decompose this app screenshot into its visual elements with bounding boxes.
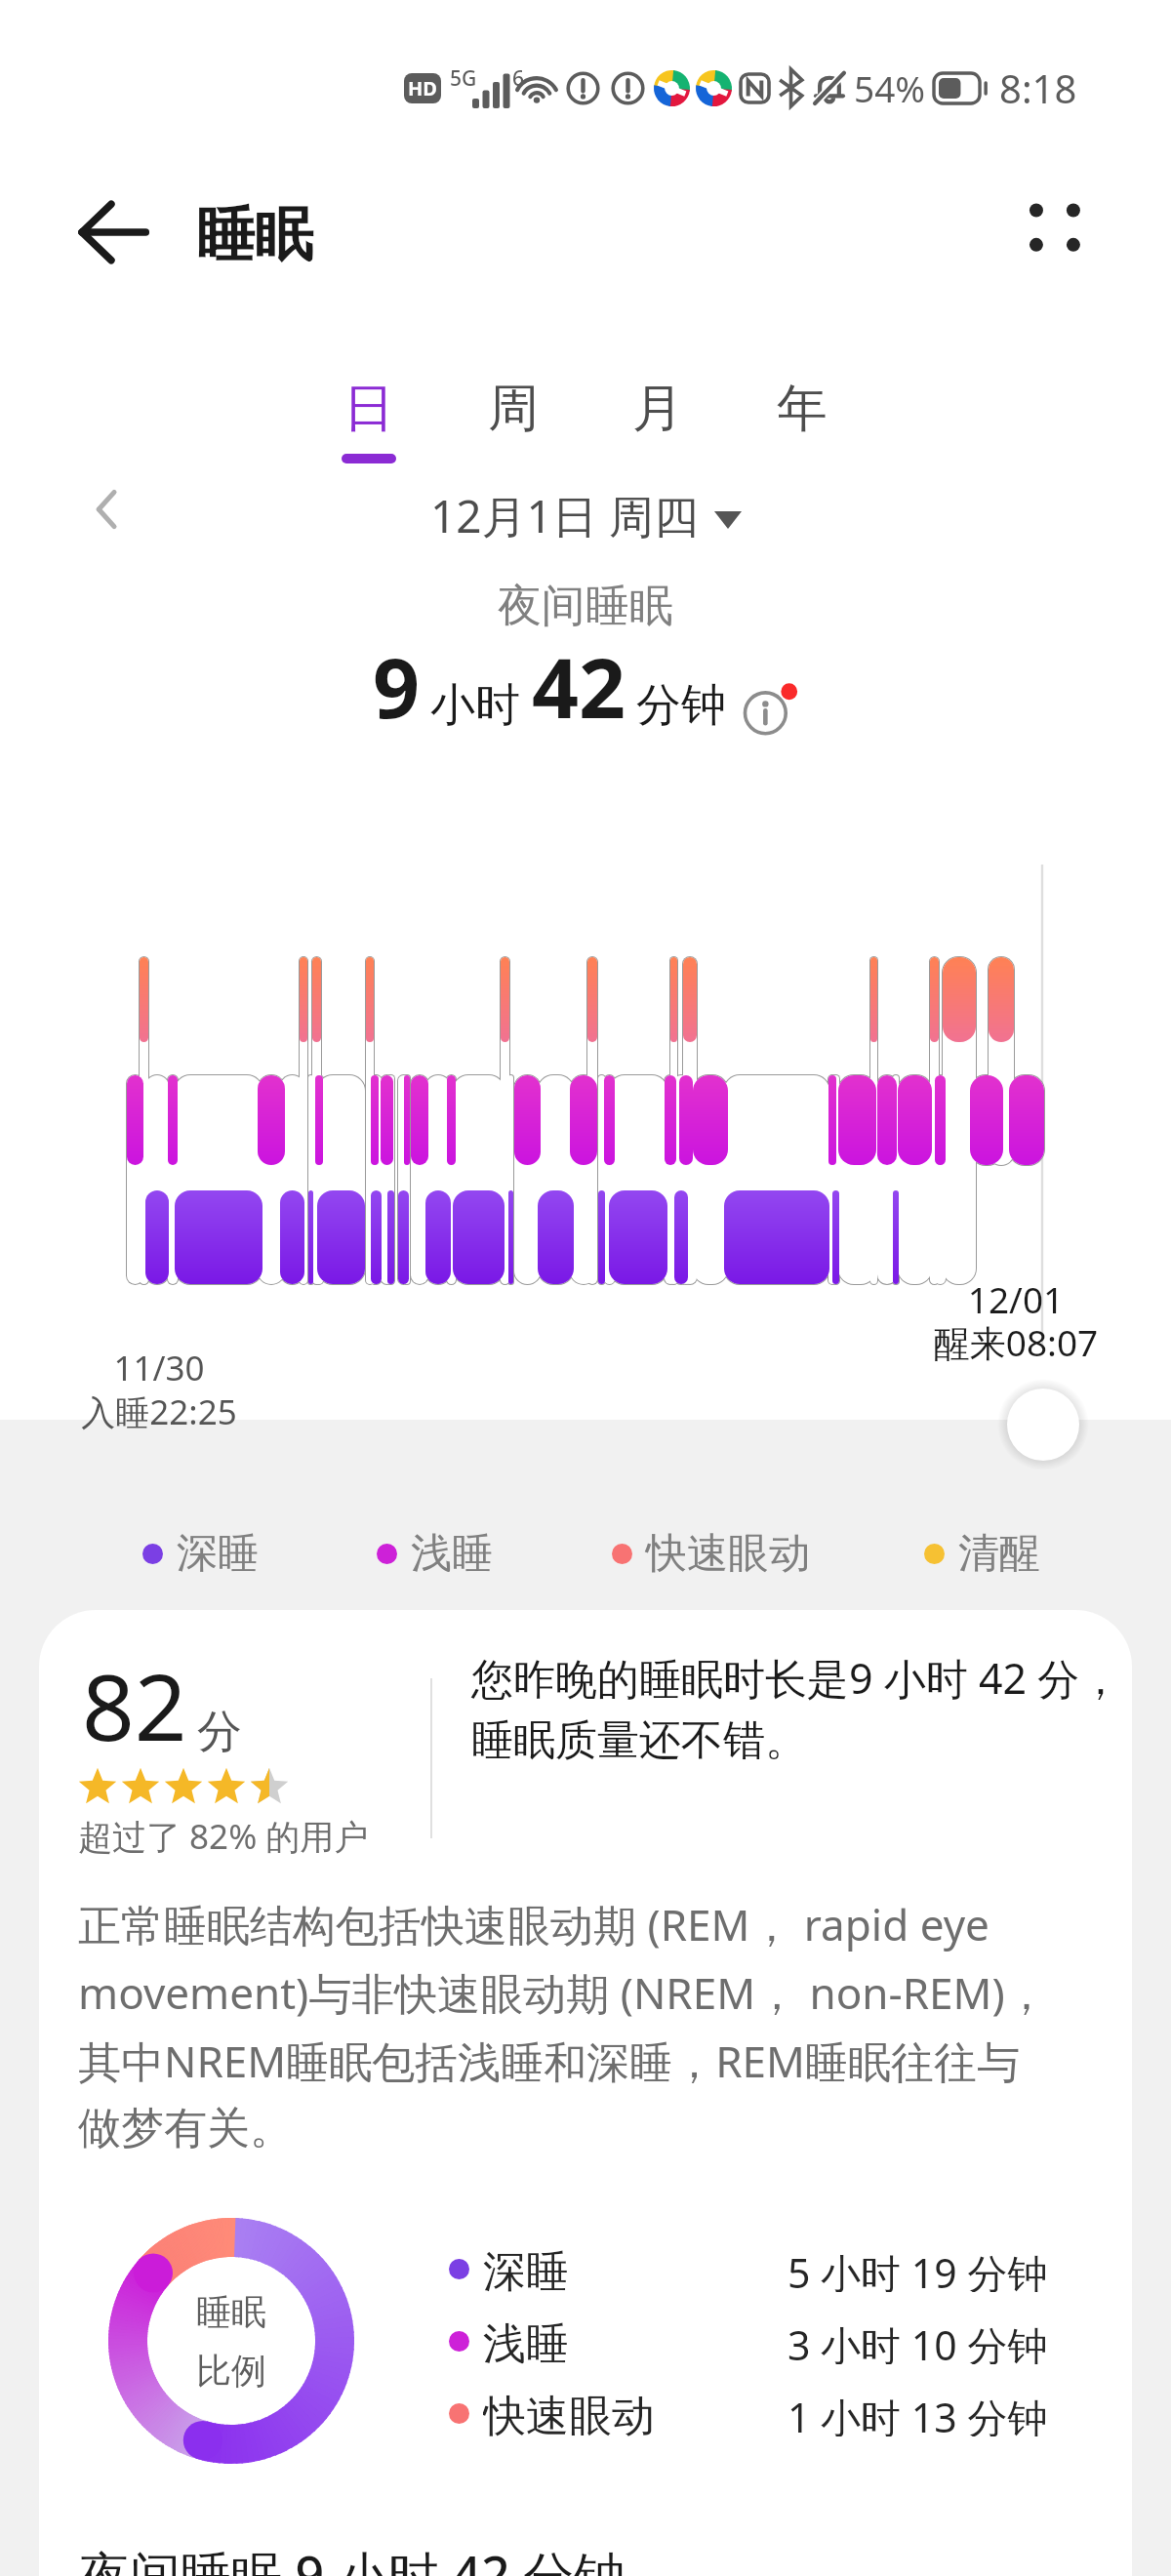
staticText: 1 小时 13 分钟 xyxy=(787,2390,1048,2436)
staticText: 月 xyxy=(632,377,683,441)
button[interactable]: 周 xyxy=(441,377,585,454)
button[interactable]: 月 xyxy=(585,377,730,454)
staticText: 年 xyxy=(777,377,828,441)
staticText: 12/01 醒来08:07 xyxy=(927,1274,1105,1367)
staticText: 6 xyxy=(512,64,525,93)
staticText: 睡眠 比例 xyxy=(196,2290,266,2393)
staticText: 分钟 xyxy=(636,677,726,734)
staticText: 深睡 xyxy=(177,1528,259,1580)
staticText: 快速眼动 xyxy=(646,1528,810,1580)
button[interactable]: 日 xyxy=(297,377,441,463)
button[interactable]: 年 xyxy=(730,377,874,454)
staticText: 睡眠 xyxy=(196,198,313,272)
staticText: 浅睡 xyxy=(411,1528,493,1580)
staticText: 夜间睡眠 9 小时 42 分钟 xyxy=(79,2539,626,2576)
staticText: 8:18 xyxy=(999,61,1077,114)
staticText: 42 xyxy=(532,630,626,742)
staticText: 浅睡 xyxy=(483,2317,569,2364)
button[interactable]: Expand chart xyxy=(988,1369,1099,1480)
button[interactable]: 12月1日 周四 xyxy=(430,485,742,546)
staticText: 5G xyxy=(450,64,477,93)
staticText: HD xyxy=(408,75,437,101)
button[interactable]: 深睡 xyxy=(142,1528,377,1580)
staticText: 夜间睡眠 xyxy=(0,579,1171,634)
staticText: 您昨晚的睡眠时长是9 小时 42 分， 睡眠质量还不错。 xyxy=(471,1649,1132,1767)
staticText: 深睡 xyxy=(483,2245,569,2292)
staticText: 11/30 入睡22:25 xyxy=(73,1345,245,1434)
button[interactable]: 快速眼动 xyxy=(449,2390,1062,2436)
staticText: 周 xyxy=(488,377,539,441)
button[interactable]: Previous day xyxy=(86,488,129,531)
button[interactable]: Info xyxy=(742,679,798,736)
staticText: 小时 xyxy=(430,677,520,734)
staticText: 12月1日 周四 xyxy=(430,485,699,546)
staticText: 清醒 xyxy=(958,1528,1040,1580)
staticText: 54% xyxy=(854,63,926,112)
staticText: 快速眼动 xyxy=(483,2390,655,2436)
button[interactable]: More options xyxy=(1005,179,1095,268)
staticText: 超过了 82% 的用户 xyxy=(78,1813,369,1860)
staticText: 82 xyxy=(82,1643,187,1768)
staticText: 日 xyxy=(343,377,394,441)
staticText: 分 xyxy=(197,1704,242,1760)
button[interactable]: 清醒 xyxy=(924,1528,1100,1580)
staticText: 9 xyxy=(373,630,421,742)
button[interactable]: Back xyxy=(68,187,158,277)
button[interactable]: 快速眼动 xyxy=(612,1528,924,1580)
button[interactable]: 浅睡 xyxy=(377,1528,612,1580)
button[interactable]: 浅睡 xyxy=(449,2317,1062,2364)
staticText: 3 小时 10 分钟 xyxy=(787,2317,1048,2364)
button[interactable]: 深睡 xyxy=(449,2245,1062,2292)
staticText: 正常睡眠结构包括快速眼动期 (REM， rapid eye movement)与… xyxy=(78,1895,1093,2155)
button[interactable]: 82 xyxy=(39,1610,1132,2576)
staticText: 5 小时 19 分钟 xyxy=(787,2245,1048,2292)
